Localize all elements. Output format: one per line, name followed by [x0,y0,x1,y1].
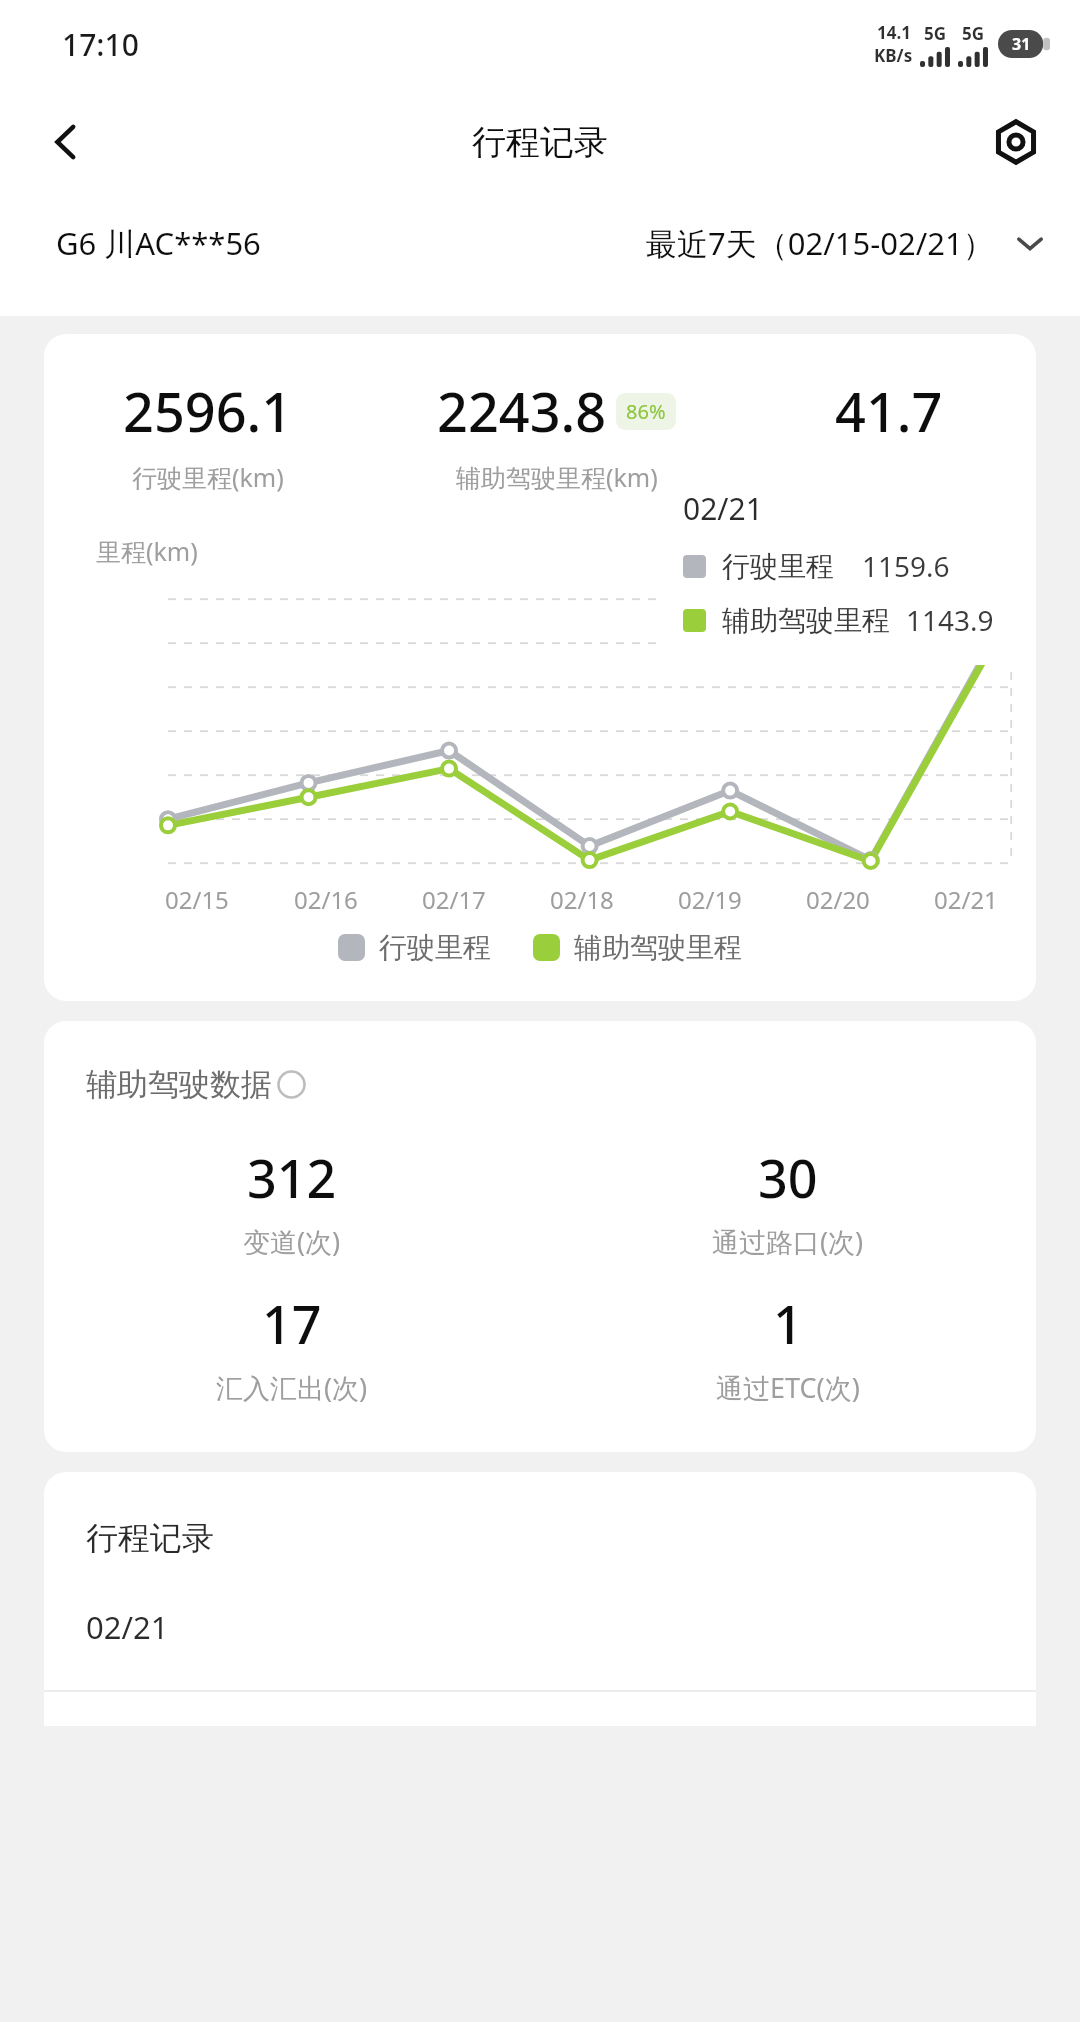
staticText: 02/17 [422,883,486,916]
staticText: 通过ETC(次) [716,1369,860,1406]
staticText: 通过路口(次) [712,1223,864,1260]
staticText: 02/15 [165,883,229,916]
staticText: 辅助驾驶里程(km) [456,460,658,494]
staticText: KB/s [874,44,913,67]
staticText: 1159.6 [862,547,950,585]
staticText: 1143.9 [906,601,994,639]
button[interactable]: Back [28,104,104,180]
staticText: 2243.8 [437,374,607,448]
staticText: 02/21 [934,883,998,916]
staticText: 02/21 [86,1606,169,1648]
staticText: 86% [626,398,666,425]
staticText: 31 [1012,33,1031,55]
staticText: 02/18 [550,883,614,916]
staticText: 02/19 [678,883,742,916]
staticText: 行程记录 [86,1518,214,1558]
staticText: 行程记录 [472,121,608,164]
staticText: 41.7 [835,374,943,448]
staticText: 行驶里程 [722,549,834,584]
staticText: 最近7天（02/15-02/21） [646,222,994,264]
staticText: 02/20 [806,883,870,916]
staticText: 行驶里程(km) [132,460,284,494]
button[interactable]: Settings [978,104,1054,180]
staticText: 辅助驾驶里程 [574,930,742,965]
staticText: 行驶里程 [379,930,491,965]
staticText: 辅助驾驶里程 [722,603,890,638]
staticText: 02/21 [683,488,763,529]
staticText: 里程(km) [96,534,198,568]
staticText: G6 川AC***56 [56,222,261,264]
button[interactable]: G6 川AC***56 [0,196,1080,290]
button[interactable]: 辅助驾驶数据 [86,1065,306,1104]
staticText: 17 [262,1288,322,1359]
staticText: 14.1 [877,21,911,44]
staticText: 1 [773,1288,803,1359]
staticText: 辅助驾驶数据 [86,1065,272,1104]
staticText: 02/16 [294,883,358,916]
staticText: 汇入汇出(次) [216,1369,368,1406]
staticText: 30 [758,1142,818,1213]
staticText: 5G [962,22,985,45]
staticText: 5G [924,22,947,45]
staticText: 2596.1 [123,374,293,448]
staticText: 17:10 [62,24,139,65]
staticText: 变道(次) [243,1223,341,1260]
staticText: 312 [247,1142,337,1213]
